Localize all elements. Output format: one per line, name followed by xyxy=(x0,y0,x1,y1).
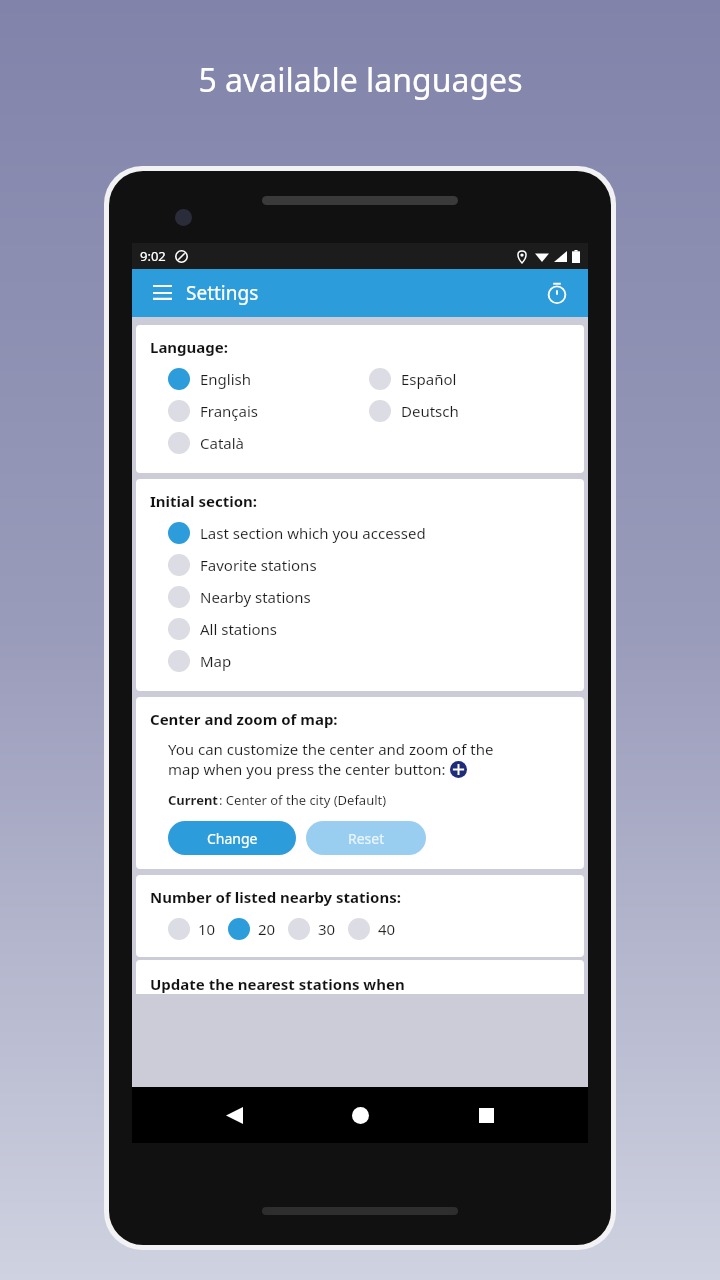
staticText: Change xyxy=(207,829,258,848)
button[interactable]: 30 xyxy=(288,913,336,945)
staticText: Map xyxy=(200,651,232,671)
button[interactable]: Home xyxy=(336,1091,384,1139)
staticText: Deutsch xyxy=(401,401,459,421)
staticText: Reset xyxy=(348,829,385,848)
staticText: 10 xyxy=(198,919,216,939)
button[interactable]: 20 xyxy=(228,913,276,945)
staticText: 40 xyxy=(378,919,396,939)
staticText: Settings xyxy=(186,280,259,306)
staticText: 9:02 xyxy=(140,247,166,265)
staticText: Number of listed nearby stations: xyxy=(150,887,401,907)
staticText: Center and zoom of map: xyxy=(150,709,338,729)
staticText: Nearby stations xyxy=(200,587,311,607)
button[interactable]: Open navigation menu xyxy=(144,275,180,311)
staticText: Initial section: xyxy=(150,491,257,511)
button[interactable]: All stations xyxy=(168,613,278,645)
button[interactable]: 10 xyxy=(168,913,216,945)
staticText: Español xyxy=(401,369,457,389)
staticText: map when you press the center button: xyxy=(168,759,450,779)
staticText: Last section which you accessed xyxy=(200,523,426,543)
button[interactable]: Timer xyxy=(538,274,576,312)
button[interactable]: 40 xyxy=(348,913,396,945)
button[interactable]: Reset xyxy=(306,821,426,855)
button[interactable]: Español xyxy=(369,363,457,395)
staticText: Language: xyxy=(150,337,228,357)
staticText: English xyxy=(200,369,252,389)
staticText: You can customize the center and zoom of… xyxy=(168,739,494,759)
button[interactable]: Change xyxy=(168,821,296,855)
button[interactable]: Favorite stations xyxy=(168,549,317,581)
staticText: : Center of the city (Default) xyxy=(219,791,387,809)
button[interactable]: Català xyxy=(168,427,245,459)
staticText: 5 available languages xyxy=(198,58,523,102)
staticText: Current xyxy=(168,791,219,809)
button[interactable]: Last section which you accessed xyxy=(168,517,426,549)
button[interactable]: English xyxy=(168,363,252,395)
staticText: Update the nearest stations when xyxy=(150,974,405,994)
staticText: Català xyxy=(200,433,245,453)
staticText: 30 xyxy=(318,919,336,939)
staticText: 20 xyxy=(258,919,276,939)
staticText: Favorite stations xyxy=(200,555,317,575)
button[interactable]: Map xyxy=(168,645,232,677)
button[interactable]: Recent apps xyxy=(462,1091,510,1139)
button[interactable]: Nearby stations xyxy=(168,581,311,613)
staticText: All stations xyxy=(200,619,278,639)
staticText: Français xyxy=(200,401,259,421)
button[interactable]: Back xyxy=(210,1091,258,1139)
button[interactable]: Deutsch xyxy=(369,395,459,427)
button[interactable]: Français xyxy=(168,395,259,427)
